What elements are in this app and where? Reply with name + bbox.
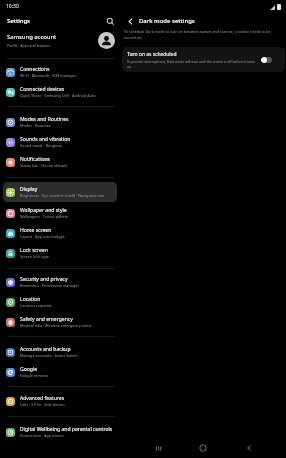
- button[interactable]: Samsung account: [0, 28, 120, 52]
- staticText: Quick Share · Samsung DeX · Android Auto: [20, 93, 96, 98]
- staticText: Advanced features: [20, 395, 65, 402]
- staticText: Status bar · Do not disturb: [20, 163, 67, 168]
- staticText: Biometrics · Permission manager: [20, 283, 79, 288]
- staticText: Turn on as scheduled: [127, 51, 177, 58]
- staticText: Location: [20, 296, 41, 303]
- staticText: Lock screen: [20, 247, 48, 254]
- button[interactable]: Search: [104, 15, 117, 28]
- staticText: Security and privacy: [20, 276, 68, 283]
- button[interactable]: Connected devices: [3, 82, 117, 102]
- staticText: Notifications: [20, 156, 51, 163]
- button[interactable]: Turn on as scheduled: [261, 57, 272, 63]
- staticText: Screen lock type: [20, 254, 49, 259]
- staticText: To schedule Dark mode to turn on between…: [124, 29, 280, 41]
- staticText: Connected devices: [20, 86, 65, 93]
- button[interactable]: Safety and emergency: [3, 312, 117, 332]
- staticText: Labs · S Pen · Side button: [20, 402, 65, 407]
- staticText: Profile · Apps and features: [7, 43, 51, 48]
- button[interactable]: Display: [3, 182, 117, 202]
- button[interactable]: Notifications: [3, 152, 117, 172]
- button[interactable]: Accounts and backup: [3, 342, 117, 362]
- staticText: Connections: [20, 66, 50, 73]
- button[interactable]: Lock screen: [3, 243, 117, 263]
- staticText: Display: [20, 186, 38, 193]
- button[interactable]: Back: [124, 15, 136, 27]
- staticText: Accounts and backup: [20, 346, 71, 353]
- staticText: Dark mode settings: [139, 17, 195, 25]
- staticText: Sounds and vibration: [20, 136, 71, 143]
- button[interactable]: Wallpaper and style: [3, 203, 117, 223]
- staticText: Wi-Fi · Bluetooth · SIM manager: [20, 73, 77, 78]
- staticText: Wallpapers · Colour palette: [20, 214, 69, 219]
- staticText: Sound mode · Ringtone: [20, 143, 62, 148]
- button[interactable]: Digital Wellbeing and parental controls: [3, 422, 117, 442]
- button[interactable]: Advanced features: [3, 391, 117, 411]
- staticText: Manage accounts · Smart Switch: [20, 353, 78, 358]
- button[interactable]: Sounds and vibration: [3, 132, 117, 152]
- staticText: Samsung account: [7, 33, 57, 41]
- staticText: Location requests: [20, 303, 52, 308]
- staticText: Safety and emergency: [20, 316, 73, 323]
- staticText: Brightness · Eye comfort shield · Naviga…: [20, 193, 105, 198]
- staticText: Layout · App icon badges: [20, 234, 65, 239]
- button[interactable]: Turn on as scheduled: [122, 47, 285, 72]
- staticText: Medical info · Wireless emergency alerts: [20, 323, 92, 328]
- staticText: Digital Wellbeing and parental controls: [20, 426, 113, 433]
- button[interactable]: Location: [3, 292, 117, 312]
- button[interactable]: Connections: [3, 62, 117, 82]
- staticText: Wallpaper and style: [20, 207, 67, 214]
- button[interactable]: Google: [3, 362, 117, 382]
- staticText: Modes · Routines: [20, 123, 51, 128]
- button[interactable]: Home screen: [3, 223, 117, 243]
- button[interactable]: Home: [195, 440, 211, 456]
- staticText: Screen time · App timers: [20, 433, 64, 438]
- staticText: Google: [20, 366, 38, 373]
- button[interactable]: Back: [241, 440, 257, 456]
- staticText: Google services: [20, 373, 49, 378]
- button[interactable]: Modes and Routines: [3, 112, 117, 132]
- staticText: Modes and Routines: [20, 116, 69, 123]
- button[interactable]: Security and privacy: [3, 272, 117, 292]
- button[interactable]: Recents: [150, 440, 166, 456]
- staticText: Settings: [7, 17, 30, 25]
- staticText: To prevent interruptions, Dark mode will…: [127, 59, 258, 69]
- staticText: Home screen: [20, 227, 52, 234]
- staticText: 10:30: [6, 3, 19, 10]
